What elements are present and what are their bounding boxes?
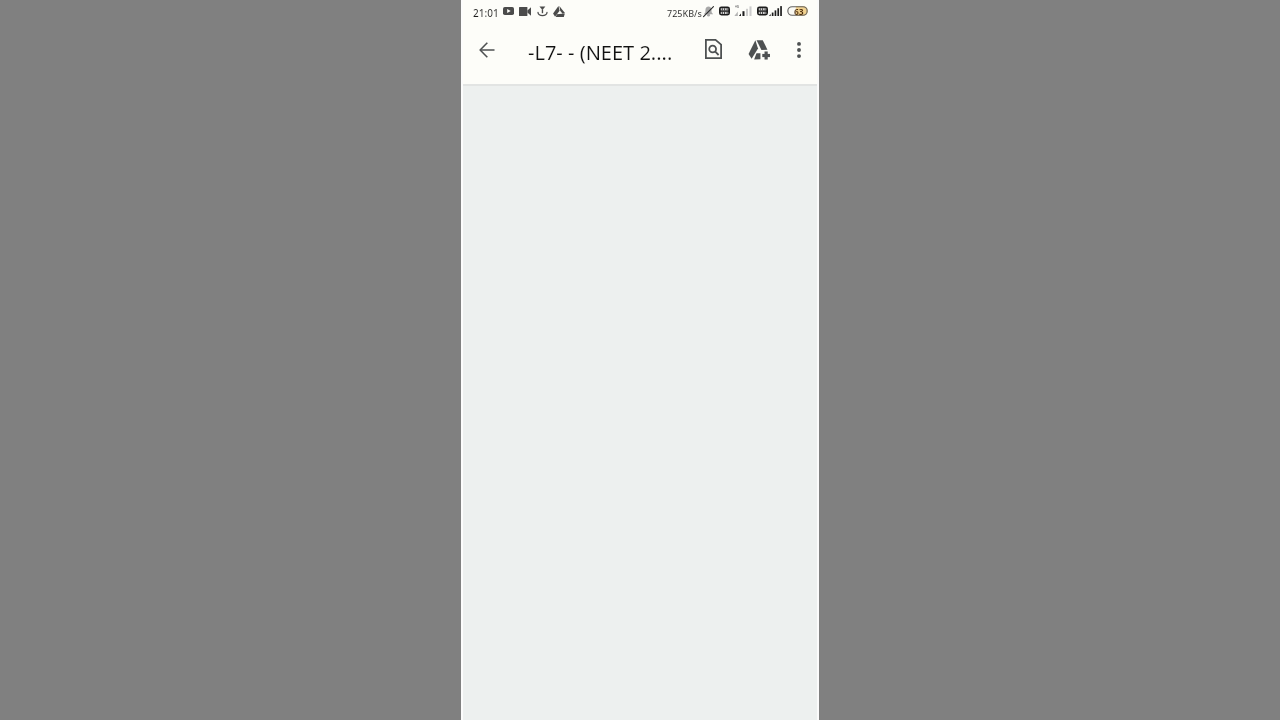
staticText: 21:01 (473, 6, 499, 20)
staticText: -L7- - (NEET 2.... (528, 39, 673, 66)
staticText: 725KB/s (667, 7, 702, 19)
button[interactable]: Navigate up (467, 30, 507, 70)
button[interactable]: Find in document (693, 29, 733, 69)
button[interactable]: More options (779, 30, 819, 70)
staticText: 63 (794, 6, 804, 16)
button[interactable]: Add to Drive (739, 30, 779, 70)
